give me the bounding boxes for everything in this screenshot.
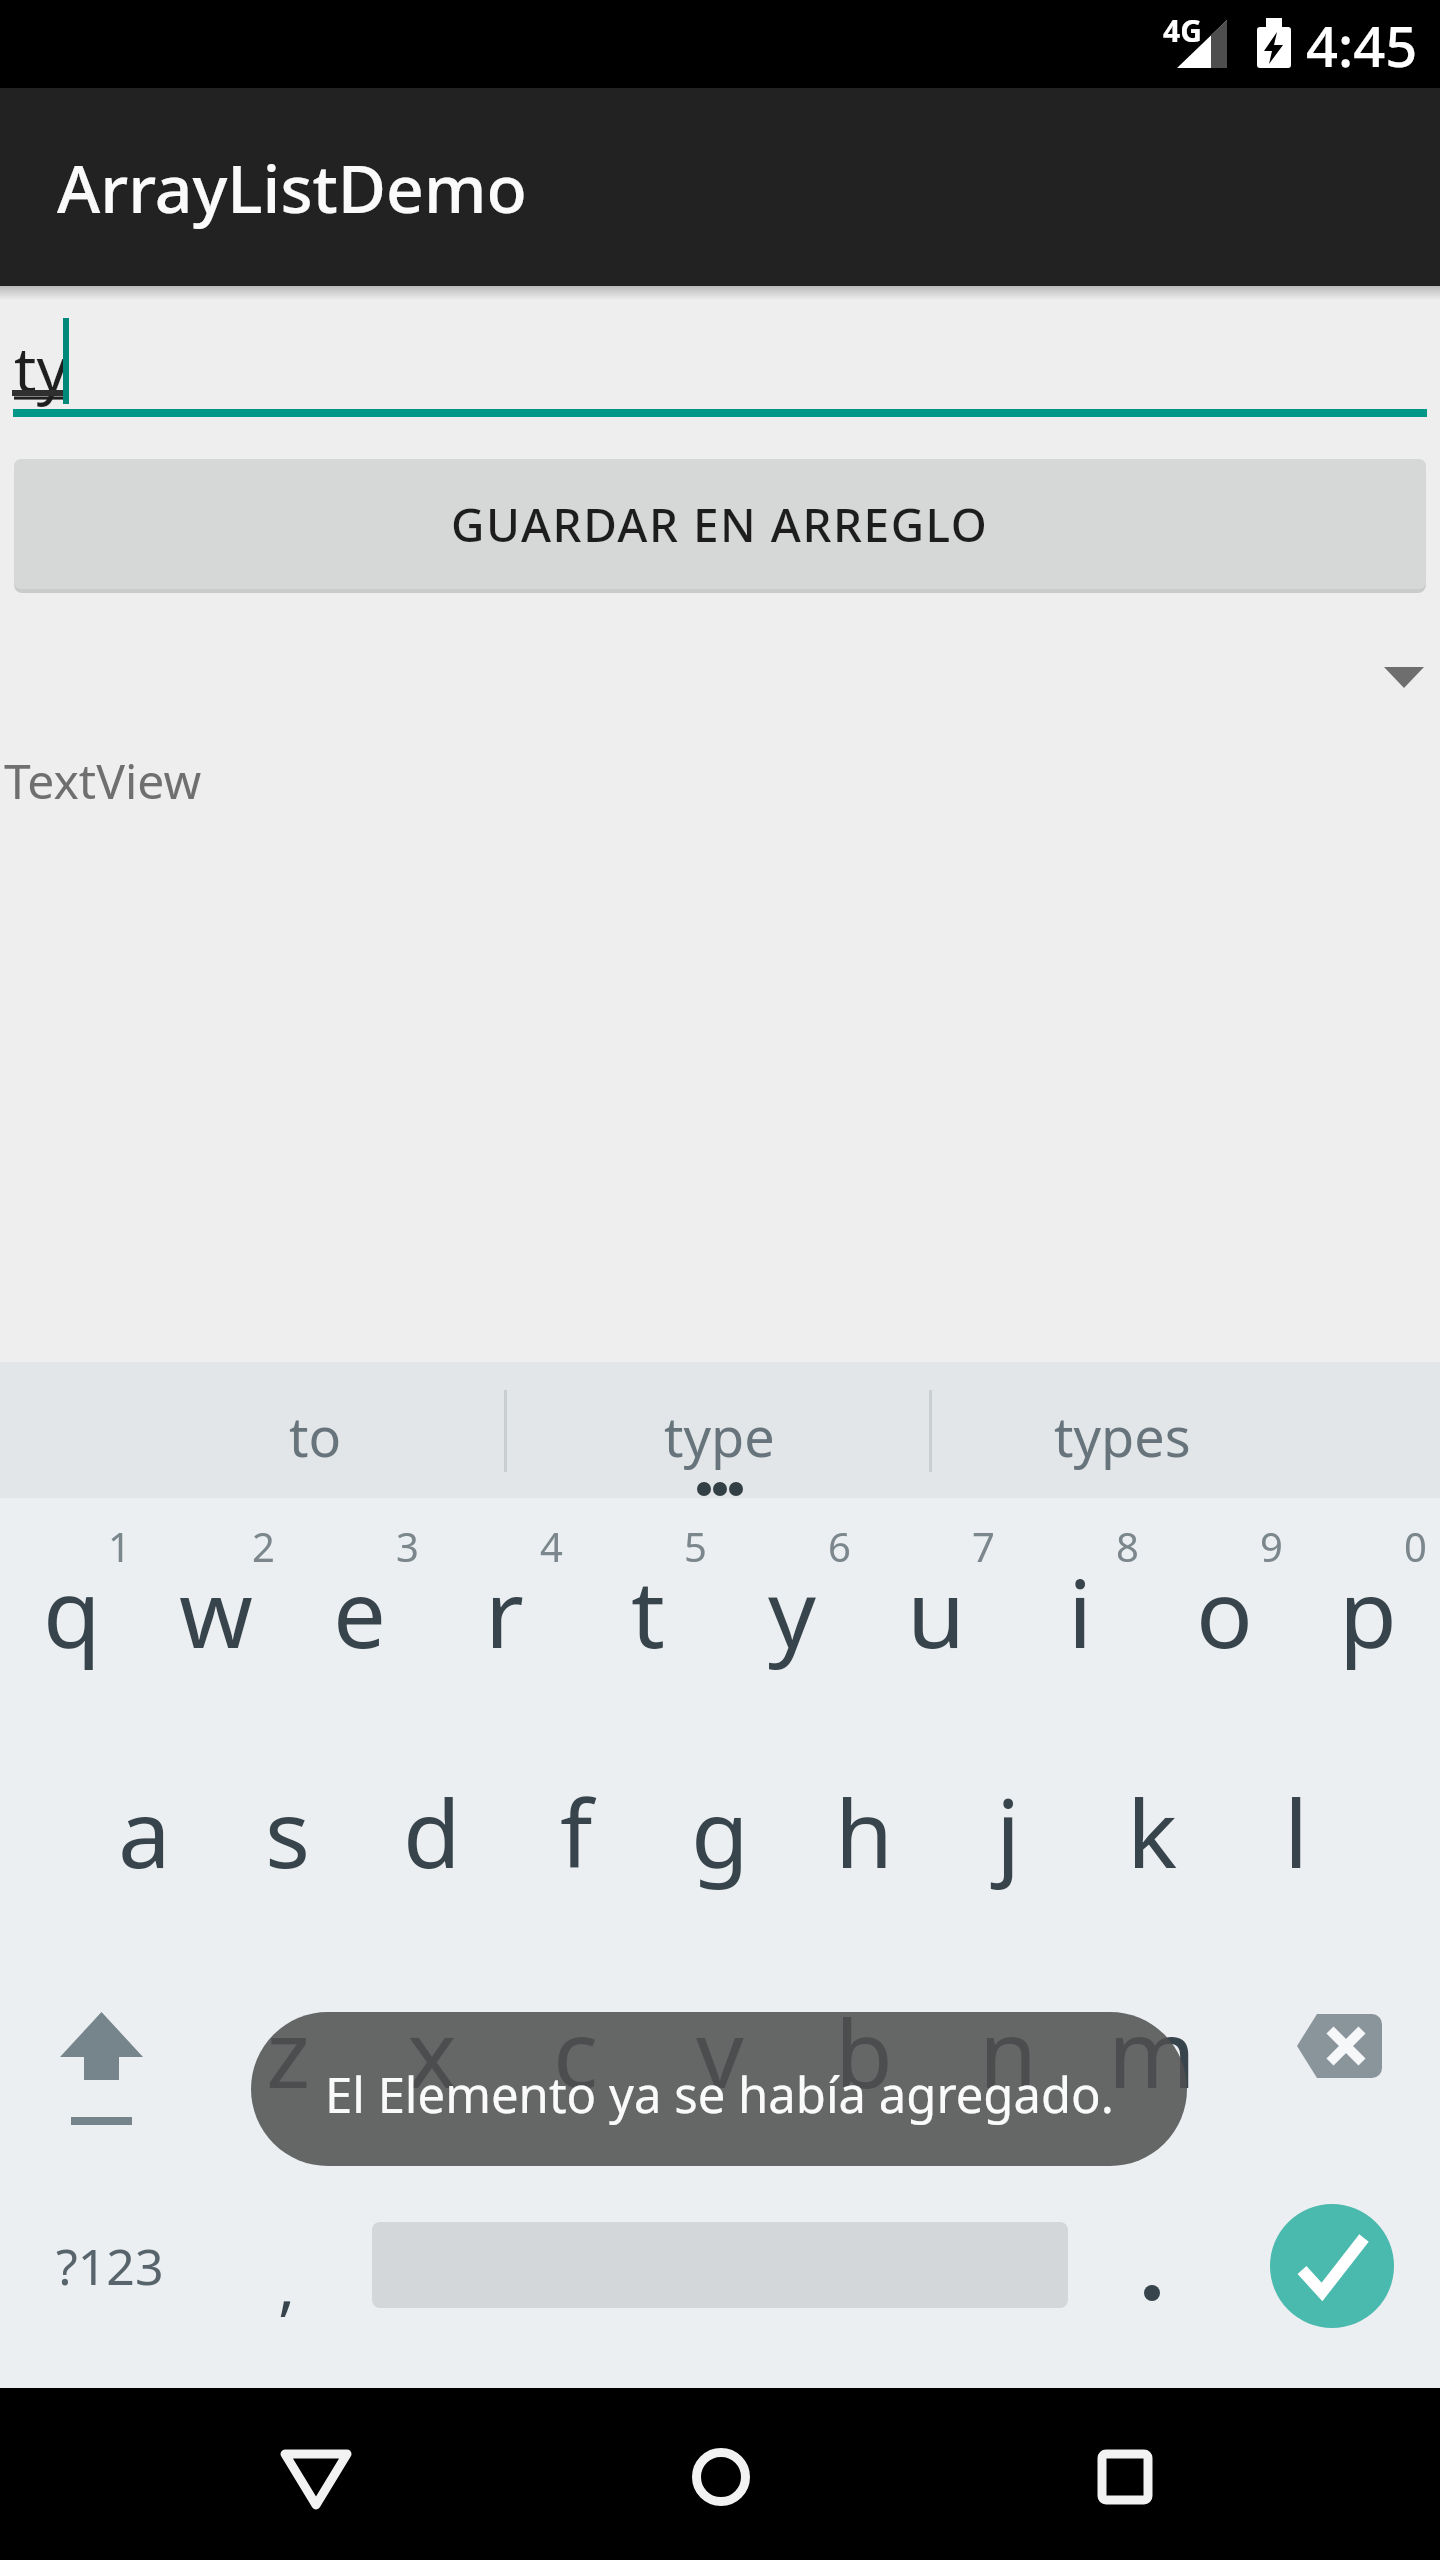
- staticText: p: [1339, 1548, 1397, 1676]
- button[interactable]: [1055, 2404, 1195, 2544]
- staticText: 6: [828, 1519, 851, 1573]
- staticText: b: [835, 1988, 893, 2116]
- staticText: q: [43, 1548, 101, 1676]
- staticText: f: [560, 1768, 593, 1896]
- button[interactable]: GUARDAR EN ARREGLO: [14, 459, 1426, 589]
- staticText: h: [835, 1768, 894, 1896]
- staticText: type: [664, 1399, 775, 1473]
- staticText: c: [553, 1988, 599, 2116]
- staticText: 2: [252, 1519, 275, 1573]
- staticText: r: [485, 1548, 524, 1676]
- button[interactable]: o: [1152, 1502, 1296, 1722]
- staticText: 4:45: [1306, 7, 1418, 83]
- button[interactable]: [1270, 2204, 1394, 2328]
- staticText: j: [996, 1768, 1021, 1896]
- button[interactable]: u: [864, 1502, 1008, 1722]
- staticText: TextView: [4, 748, 202, 813]
- staticText: 1: [108, 1519, 131, 1573]
- button[interactable]: [651, 2404, 791, 2544]
- button[interactable]: a: [72, 1722, 216, 1942]
- staticText: 7: [972, 1519, 995, 1573]
- button[interactable]: type: [519, 1371, 919, 1501]
- button[interactable]: l: [1224, 1722, 1368, 1942]
- staticText: y: [768, 1548, 816, 1676]
- staticText: 4: [540, 1519, 563, 1573]
- button[interactable]: types: [922, 1371, 1322, 1501]
- staticText: z: [266, 1988, 311, 2116]
- button[interactable]: d: [360, 1722, 504, 1942]
- staticText: to: [289, 1399, 342, 1473]
- staticText: 0: [1404, 1519, 1427, 1573]
- button[interactable]: v: [648, 1942, 792, 2162]
- button[interactable]: n: [936, 1942, 1080, 2162]
- staticText: s: [265, 1768, 311, 1896]
- button[interactable]: [30, 1960, 174, 2160]
- button[interactable]: t: [576, 1502, 720, 1722]
- staticText: i: [1068, 1548, 1093, 1676]
- button[interactable]: e: [288, 1502, 432, 1722]
- staticText: u: [907, 1548, 966, 1676]
- button[interactable]: k: [1080, 1722, 1224, 1942]
- staticText: 3: [396, 1519, 419, 1573]
- staticText: 8: [1116, 1519, 1139, 1573]
- staticText: El Elemento ya se había agregado.: [325, 2061, 1114, 2128]
- staticText: v: [696, 1988, 744, 2116]
- button[interactable]: ,: [217, 2204, 357, 2364]
- staticText: l: [1284, 1768, 1309, 1896]
- button[interactable]: b: [792, 1942, 936, 2162]
- button[interactable]: to: [115, 1371, 515, 1501]
- staticText: GUARDAR EN ARREGLO: [451, 493, 989, 556]
- button[interactable]: j: [936, 1722, 1080, 1942]
- staticText: a: [118, 1768, 171, 1896]
- staticText: 9: [1260, 1519, 1283, 1573]
- button[interactable]: s: [216, 1722, 360, 1942]
- button[interactable]: [1000, 635, 1430, 715]
- button[interactable]: g: [648, 1722, 792, 1942]
- button[interactable]: [246, 2404, 386, 2544]
- staticText: ,: [278, 2241, 296, 2328]
- staticText: 5: [684, 1519, 707, 1573]
- staticText: 4G: [1163, 10, 1202, 51]
- staticText: x: [407, 1988, 457, 2116]
- button[interactable]: [1270, 1960, 1414, 2160]
- button[interactable]: i: [1008, 1502, 1152, 1722]
- staticText: ?123: [56, 2232, 164, 2300]
- staticText: ty: [14, 326, 69, 410]
- staticText: e: [333, 1548, 387, 1676]
- staticText: g: [691, 1768, 749, 1896]
- staticText: t: [631, 1548, 665, 1676]
- button[interactable]: y: [720, 1502, 864, 1722]
- button[interactable]: ?123: [0, 2186, 220, 2346]
- button[interactable]: q: [0, 1502, 144, 1722]
- button[interactable]: w: [144, 1502, 288, 1722]
- staticText: ArrayListDemo: [57, 142, 527, 232]
- button[interactable]: m: [1080, 1942, 1224, 2162]
- button[interactable]: p: [1296, 1502, 1440, 1722]
- button[interactable]: x: [360, 1942, 504, 2162]
- staticText: m: [1108, 1988, 1196, 2116]
- staticText: o: [1196, 1548, 1253, 1676]
- button[interactable]: f: [504, 1722, 648, 1942]
- button[interactable]: z: [216, 1942, 360, 2162]
- button[interactable]: r: [432, 1502, 576, 1722]
- staticText: n: [979, 1988, 1038, 2116]
- staticText: types: [1054, 1399, 1191, 1473]
- button[interactable]: h: [792, 1722, 936, 1942]
- staticText: w: [179, 1548, 253, 1676]
- button[interactable]: c: [504, 1942, 648, 2162]
- staticText: d: [403, 1768, 461, 1896]
- staticText: k: [1127, 1768, 1178, 1896]
